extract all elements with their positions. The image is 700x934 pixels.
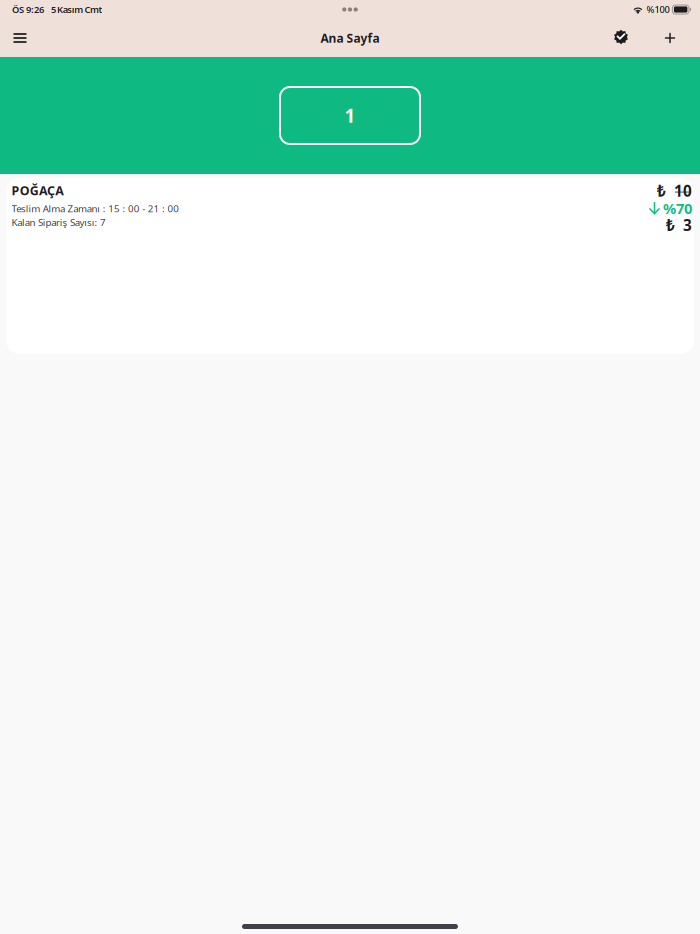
staticText: %100	[646, 3, 669, 16]
staticText: POĞAÇA	[11, 182, 64, 199]
staticText: 5 Kasım Cmt	[51, 3, 102, 16]
staticText: %70	[663, 198, 692, 218]
button[interactable]: Add	[641, 21, 699, 55]
staticText: Teslim Alma Zamanı : 15 : 00 - 21 : 00	[11, 202, 179, 215]
staticText: ₺	[666, 215, 675, 235]
staticText: ÖS 9:26	[12, 3, 44, 16]
staticText: 10	[674, 180, 692, 201]
button[interactable]: 1	[280, 87, 420, 144]
staticText: 1	[344, 103, 355, 128]
staticText: ₺	[657, 180, 666, 201]
button[interactable]: Verified	[601, 21, 641, 55]
staticText: 3	[683, 215, 692, 235]
staticText: Ana Sayfa	[320, 30, 379, 46]
staticText: Kalan Sipariş Sayısı: 7	[11, 216, 106, 229]
button[interactable]: Menu	[0, 21, 40, 55]
